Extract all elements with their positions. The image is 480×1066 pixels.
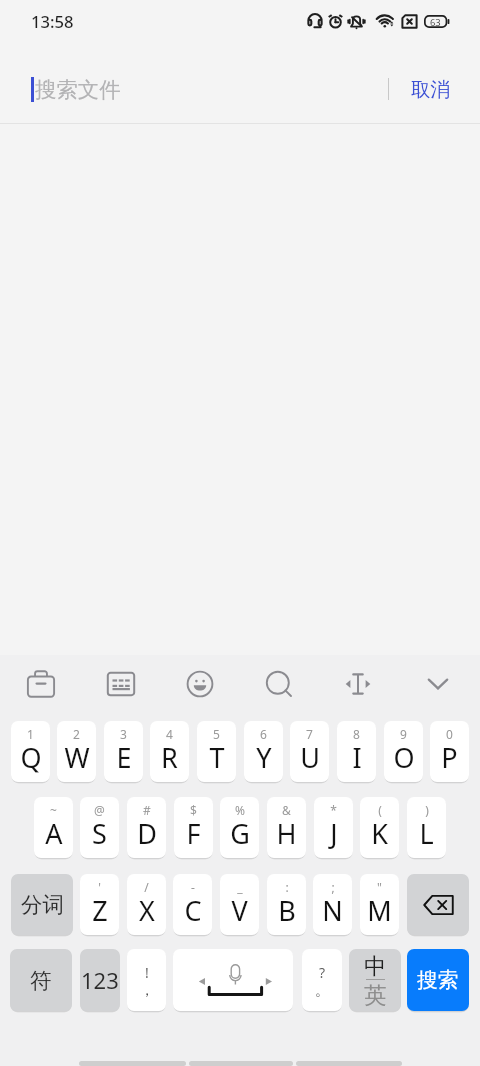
staticText: ( [378, 802, 382, 818]
staticText: C [184, 892, 202, 929]
button[interactable]: Space [173, 949, 293, 1011]
button[interactable]: - [173, 874, 212, 935]
staticText: 5 [213, 726, 220, 742]
staticText: $ [190, 802, 197, 818]
staticText: ) [425, 802, 429, 818]
button[interactable]: 0 [430, 721, 469, 782]
button[interactable]: 4 [150, 721, 189, 782]
staticText: 13:58 [31, 10, 74, 33]
button[interactable]: ) [407, 797, 446, 858]
staticText: 。 [315, 982, 329, 1000]
staticText: 取消 [411, 77, 450, 102]
button[interactable]: 中 [349, 949, 401, 1011]
staticText: 英 [364, 981, 387, 1009]
staticText: : [285, 879, 289, 895]
button[interactable]: 5 [197, 721, 236, 782]
staticText: Q [20, 739, 42, 776]
staticText: 123 [81, 965, 119, 995]
staticText: U [300, 739, 320, 776]
staticText: - [191, 879, 195, 895]
staticText: 6 [260, 726, 267, 742]
staticText: % [235, 802, 245, 818]
button[interactable]: Search [257, 662, 301, 706]
button[interactable]: * [314, 797, 353, 858]
button[interactable]: ; [313, 874, 352, 935]
button[interactable]: 9 [384, 721, 423, 782]
staticText: ~ [50, 802, 57, 818]
button[interactable]: Hide keyboard [416, 662, 460, 706]
button[interactable]: ? [302, 949, 342, 1011]
button[interactable]: & [267, 797, 306, 858]
staticText: 搜索文件 [35, 76, 121, 103]
button[interactable]: 8 [337, 721, 376, 782]
staticText: F [186, 815, 201, 852]
staticText: X [139, 892, 155, 929]
staticText: 63 [430, 16, 441, 29]
staticText: 符 [30, 967, 52, 994]
button[interactable]: _ [220, 874, 259, 935]
staticText: ' [98, 879, 101, 895]
button[interactable]: 7 [290, 721, 329, 782]
button[interactable]: Clipboard [19, 662, 63, 706]
staticText: ? [319, 963, 326, 982]
staticText: 中 [364, 952, 387, 980]
button[interactable]: Move cursor [336, 662, 380, 706]
staticText: D [137, 815, 157, 852]
staticText: S [92, 815, 107, 852]
button[interactable]: Emoji [178, 662, 222, 706]
staticText: 4 [166, 726, 173, 742]
staticText: " [377, 879, 382, 895]
staticText: O [393, 739, 415, 776]
staticText: / [144, 879, 149, 895]
staticText: 2 [73, 726, 80, 742]
staticText: ! [145, 963, 149, 982]
staticText: 1 [27, 726, 34, 742]
button[interactable]: ! [127, 949, 166, 1011]
button[interactable]: 搜索 [407, 949, 469, 1011]
staticText: 9 [400, 726, 407, 742]
staticText: 3 [120, 726, 127, 742]
staticText: T [209, 739, 225, 776]
button[interactable]: ~ [34, 797, 73, 858]
staticText: A [45, 815, 63, 852]
button[interactable]: # [127, 797, 166, 858]
staticText: P [441, 739, 458, 776]
button[interactable]: 符 [10, 949, 72, 1011]
staticText: 分词 [21, 891, 64, 918]
button[interactable]: 1 [11, 721, 50, 782]
staticText: N [322, 892, 343, 929]
staticText: ， [140, 982, 154, 1000]
button[interactable]: 取消 [392, 66, 472, 112]
button[interactable]: 分词 [11, 874, 73, 935]
staticText: 搜索 [417, 967, 459, 993]
staticText: G [230, 815, 250, 852]
staticText: # [143, 802, 151, 818]
staticText: @ [94, 802, 105, 818]
button[interactable]: @ [80, 797, 119, 858]
button[interactable]: % [220, 797, 259, 858]
button[interactable]: Backspace [407, 874, 469, 935]
button[interactable]: 搜索文件 [24, 66, 364, 112]
staticText: * [330, 802, 337, 818]
staticText: R [161, 739, 178, 776]
staticText: B [278, 892, 296, 929]
staticText: K [371, 815, 388, 852]
button[interactable]: " [360, 874, 399, 935]
button[interactable]: ' [80, 874, 119, 935]
staticText: I [352, 739, 362, 776]
button[interactable]: $ [174, 797, 213, 858]
staticText: & [282, 802, 291, 818]
staticText: H [276, 815, 297, 852]
button[interactable]: : [267, 874, 306, 935]
staticText: Y [256, 739, 272, 776]
staticText: M [367, 892, 392, 929]
button[interactable]: 6 [244, 721, 283, 782]
button[interactable]: Keyboard layout [99, 662, 143, 706]
button[interactable]: 3 [104, 721, 143, 782]
button[interactable]: 123 [80, 949, 120, 1011]
staticText: 0 [446, 726, 453, 742]
button[interactable]: / [127, 874, 166, 935]
button[interactable]: ( [360, 797, 399, 858]
staticText: V [231, 892, 248, 929]
button[interactable]: 2 [57, 721, 96, 782]
